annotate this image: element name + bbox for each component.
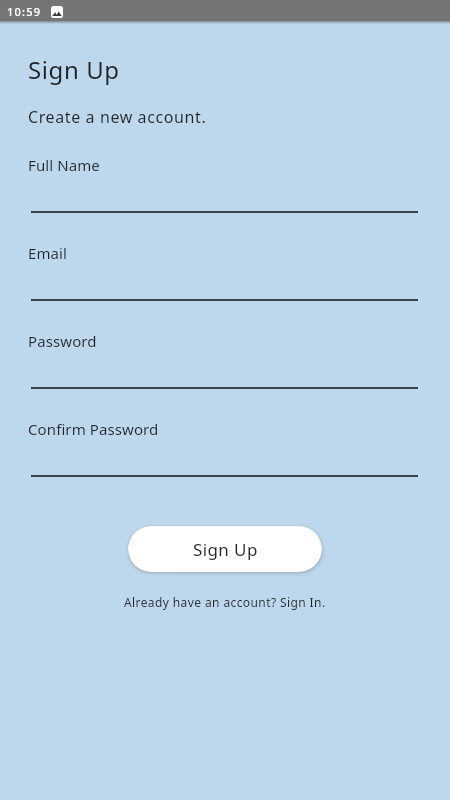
- button[interactable]: Already have an account? Sign In.: [0, 592, 450, 612]
- button[interactable]: Email: [28, 243, 418, 302]
- staticText: Sign Up: [193, 538, 258, 561]
- button[interactable]: Sign Up: [128, 526, 322, 572]
- staticText: Full Name: [28, 155, 100, 175]
- staticText: Confirm Password: [28, 419, 159, 439]
- other: Screenshot notification: [51, 6, 63, 18]
- staticText: Already have an account? Sign In.: [124, 594, 326, 610]
- staticText: Sign Up: [28, 53, 120, 86]
- button[interactable]: Full Name: [28, 155, 418, 214]
- staticText: 10:59: [7, 4, 42, 19]
- staticText: Password: [28, 331, 97, 351]
- button[interactable]: Password: [28, 331, 418, 390]
- staticText: Email: [28, 243, 68, 263]
- staticText: Create a new account.: [28, 106, 207, 128]
- button[interactable]: Confirm Password: [28, 419, 418, 478]
